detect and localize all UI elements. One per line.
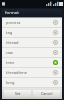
button[interactable]: Cancel bbox=[33, 90, 60, 97]
staticText: time bbox=[6, 60, 53, 65]
staticText: format bbox=[5, 10, 19, 16]
staticText: long bbox=[6, 80, 53, 85]
other: Not selected bbox=[53, 30, 58, 35]
button[interactable]: raw bbox=[2, 48, 62, 57]
staticText: Cancel bbox=[41, 91, 53, 96]
other: Not selected bbox=[53, 50, 58, 55]
staticText: Set bbox=[15, 91, 21, 96]
button[interactable]: thread bbox=[2, 38, 62, 47]
button[interactable]: long bbox=[2, 78, 62, 87]
staticText: tag bbox=[6, 30, 53, 35]
other: Not selected bbox=[53, 70, 58, 75]
button[interactable]: time bbox=[2, 58, 62, 67]
staticText: thread bbox=[6, 40, 53, 45]
button[interactable]: process bbox=[2, 18, 62, 27]
other: Selected bbox=[53, 60, 58, 65]
other: Not selected bbox=[53, 20, 58, 25]
button[interactable]: tag bbox=[2, 28, 62, 37]
button[interactable]: threadtime bbox=[2, 68, 62, 77]
button[interactable]: Set bbox=[4, 90, 31, 97]
other: Not selected bbox=[53, 80, 58, 85]
other: Not selected bbox=[53, 40, 58, 45]
staticText: raw bbox=[6, 50, 53, 55]
staticText: process bbox=[6, 20, 53, 25]
staticText: threadtime bbox=[6, 70, 53, 75]
